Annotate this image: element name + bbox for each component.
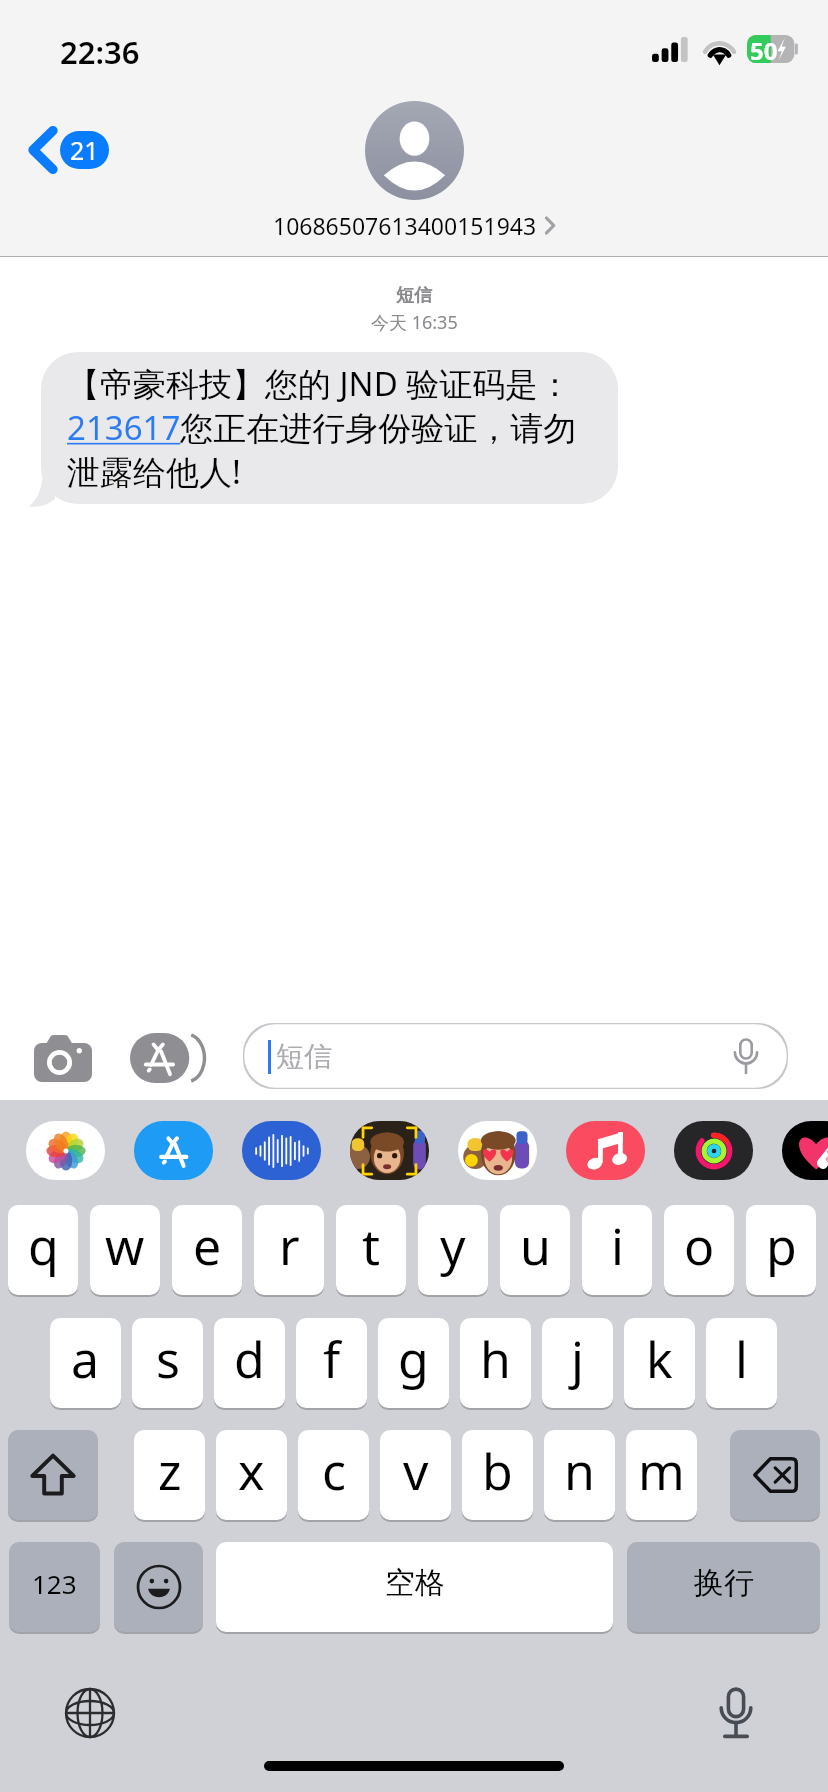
staticText: d [234,1325,265,1393]
staticText: y [440,1212,466,1280]
button[interactable]: p [746,1205,816,1295]
staticText: o [684,1212,715,1280]
button[interactable]: Health [782,1121,828,1180]
staticText: 今天 16:35 [371,310,458,335]
button[interactable]: 短信 [243,1023,788,1089]
staticText: p [766,1212,797,1280]
staticText: 空格 [385,1564,445,1602]
button[interactable]: d [214,1318,285,1408]
button[interactable]: g [378,1318,449,1408]
button[interactable]: Back to 21 conversations [24,122,115,178]
button[interactable]: 123 [9,1542,100,1632]
staticText: t [362,1212,381,1280]
staticText: b [482,1437,513,1505]
button[interactable]: App Store [134,1121,213,1180]
staticText: 22:36 [60,31,140,73]
other: Dictate [728,1038,764,1074]
staticText: u [520,1212,551,1280]
staticText: q [28,1212,59,1280]
staticText: r [279,1212,300,1280]
staticText: 21 [70,133,99,167]
button[interactable]: q [8,1205,78,1295]
staticText: 短信 [276,1039,332,1074]
staticText: a [71,1325,100,1393]
button[interactable]: i [582,1205,652,1295]
button[interactable]: v [380,1430,451,1520]
staticText: e [193,1212,222,1280]
button[interactable]: Switch keyboard [57,1680,123,1746]
staticText: g [398,1325,429,1393]
button[interactable]: l [706,1318,777,1408]
button[interactable]: w [90,1205,160,1295]
staticText: h [480,1325,511,1393]
staticText: 短信 [396,284,432,307]
button[interactable]: t [336,1205,406,1295]
button[interactable]: n [544,1430,615,1520]
staticText: x [238,1437,265,1505]
button[interactable]: Fitness [674,1121,753,1180]
button[interactable]: o [664,1205,734,1295]
staticText: f [323,1325,341,1393]
staticText: 10686507613400151943 [273,210,537,241]
button[interactable]: Photos [26,1121,105,1180]
button[interactable]: Audio [242,1121,321,1180]
button[interactable]: App Store [128,1029,208,1087]
button[interactable]: Music [566,1121,645,1180]
button[interactable]: Camera [28,1029,98,1087]
button[interactable]: 换行 [627,1542,820,1632]
button[interactable]: m [626,1430,697,1520]
staticText: i [611,1212,624,1280]
button[interactable]: Emoji [114,1542,203,1632]
staticText: z [158,1437,182,1505]
button[interactable]: Stickers [458,1121,537,1180]
staticText: v [403,1437,429,1505]
staticText: 50 [750,34,778,62]
staticText: l [735,1325,748,1393]
staticText: k [646,1325,673,1393]
staticText: c [322,1437,346,1505]
button[interactable]: z [134,1430,205,1520]
button[interactable]: u [500,1205,570,1295]
button[interactable]: r [254,1205,324,1295]
staticText: j [571,1325,584,1393]
button[interactable]: 10686507613400151943 [273,210,555,241]
button[interactable]: Dictate [703,1680,769,1746]
button[interactable]: a [50,1318,121,1408]
button[interactable]: c [298,1430,369,1520]
staticText: 【帝豪科技】您的 JND 验证码是：213617您正在进行身份验证，请勿泄露给他… [67,361,578,494]
button[interactable]: Shift [8,1430,98,1520]
button[interactable]: j [542,1318,613,1408]
button[interactable]: h [460,1318,531,1408]
button[interactable]: f [296,1318,367,1408]
button[interactable]: y [418,1205,488,1295]
button[interactable]: Memoji [350,1121,429,1180]
button[interactable]: 空格 [216,1542,613,1632]
button[interactable]: k [624,1318,695,1408]
staticText: w [105,1212,145,1280]
button[interactable]: e [172,1205,242,1295]
staticText: 换行 [694,1564,754,1602]
button[interactable]: b [462,1430,533,1520]
button[interactable]: x [216,1430,287,1520]
staticText: n [564,1437,595,1505]
staticText: m [638,1437,685,1505]
button[interactable]: Delete [730,1430,820,1520]
staticText: s [156,1325,180,1393]
staticText: 123 [32,1566,77,1601]
button[interactable]: s [132,1318,203,1408]
